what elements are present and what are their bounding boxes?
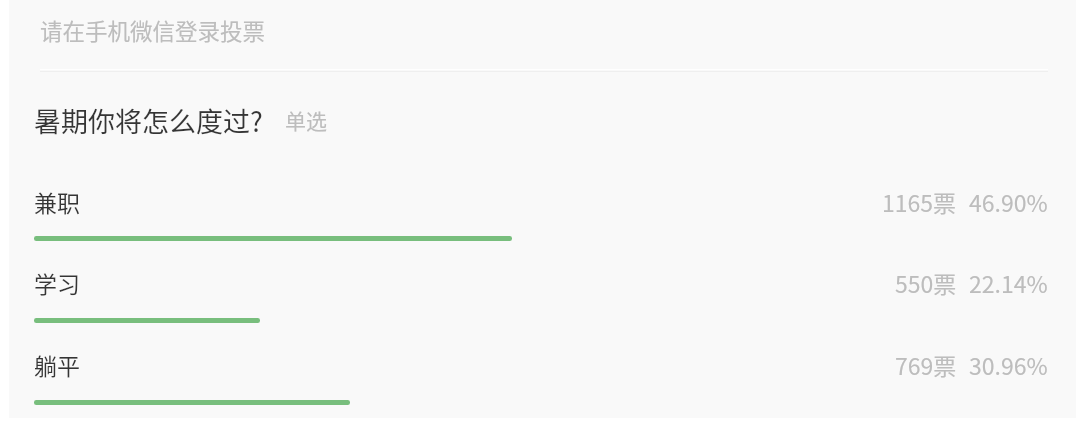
staticText: 兼职 [34, 185, 80, 218]
staticText: 30.96% [969, 348, 1048, 381]
staticText: 1165票 [882, 185, 957, 218]
staticText: 22.14% [969, 266, 1048, 299]
button[interactable]: 兼职 [9, 185, 1076, 249]
staticText: 550票 [895, 266, 957, 299]
staticText: 暑期你将怎么度过? [34, 101, 263, 140]
staticText: 请在手机微信登录投票 [40, 14, 266, 47]
button[interactable]: 躺平 [9, 348, 1076, 412]
staticText: 46.90% [969, 185, 1048, 218]
staticText: 学习 [34, 266, 80, 299]
staticText: 躺平 [34, 348, 80, 381]
button[interactable]: 请在手机微信登录投票 [40, 10, 266, 56]
staticText: 769票 [895, 348, 957, 381]
staticText: 单选 [285, 105, 327, 135]
button[interactable]: 学习 [9, 266, 1076, 330]
